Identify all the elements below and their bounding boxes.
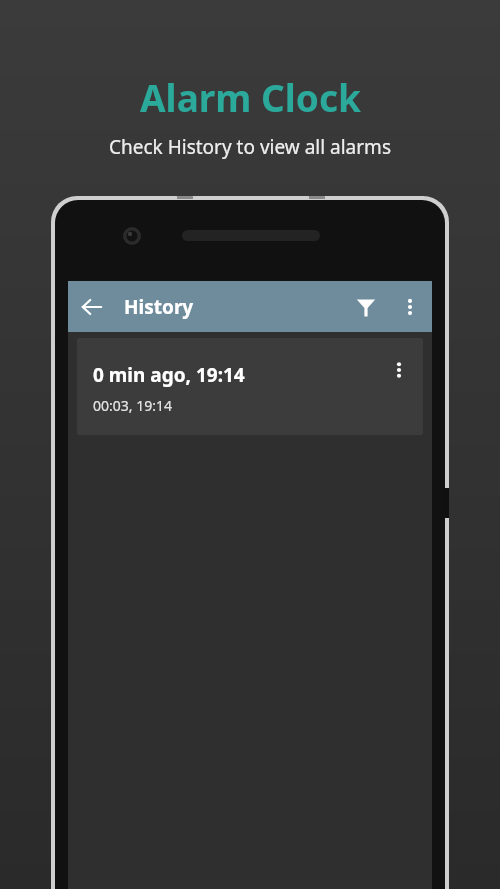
button[interactable]: Filter (344, 285, 388, 329)
button[interactable]: Item options (381, 352, 417, 388)
button[interactable]: 0 min ago, 19:14 (77, 338, 423, 435)
button[interactable]: More options (388, 285, 432, 329)
staticText: 00:03, 19:14 (93, 396, 172, 415)
staticText: 0 min ago, 19:14 (93, 362, 245, 388)
staticText: Check History to view all alarms (109, 134, 391, 160)
staticText: Alarm Clock (140, 72, 361, 122)
staticText: History (124, 294, 194, 320)
button[interactable]: Back (68, 283, 116, 331)
